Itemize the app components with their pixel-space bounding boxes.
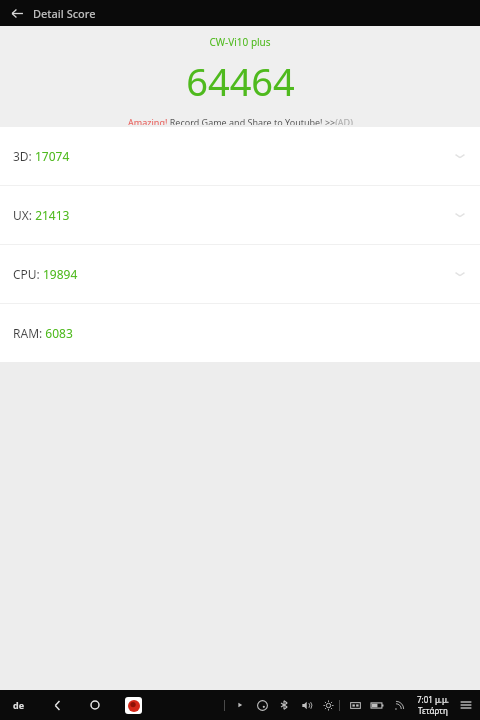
other: Media [229,690,251,720]
staticText: RAM: 6083 [13,325,73,341]
button[interactable]: Back [38,690,76,720]
button[interactable]: Recent app [114,690,152,720]
button[interactable]: Back [6,2,28,24]
staticText: UX: 21413 [13,207,70,223]
staticText: Detail Score [33,6,96,21]
button[interactable]: UX: 21413 [0,186,480,244]
other: Storage [344,690,366,720]
other: Bluetooth [273,690,295,720]
button[interactable]: Input method [0,690,38,720]
button[interactable]: 3D: 17074 [0,127,480,185]
other: Status [251,690,273,720]
staticText: CPU: 19894 [13,266,78,282]
button[interactable]: CPU: 19894 [0,245,480,303]
other: Brightness [317,690,339,720]
staticText: Amazing! Record Game and Share to Youtub… [128,116,353,125]
staticText: CW-Vi10 plus [209,35,271,49]
staticText: 7:01 μ.μ. [417,694,449,705]
other: Volume [295,690,317,720]
button[interactable]: RAM: 6083 [0,304,480,362]
button[interactable]: Amazing! Record Game and Share to Youtub… [124,114,357,127]
button[interactable]: Home [76,690,114,720]
button[interactable]: Menu [452,690,480,720]
staticText: de [13,699,25,711]
staticText: 64464 [186,55,295,107]
button[interactable]: 7:01 μ.μ. [414,690,452,720]
other: Battery [366,690,388,720]
staticText: Τετάρτη [418,705,448,716]
other: Network [388,690,410,720]
staticText: 3D: 17074 [13,148,70,164]
